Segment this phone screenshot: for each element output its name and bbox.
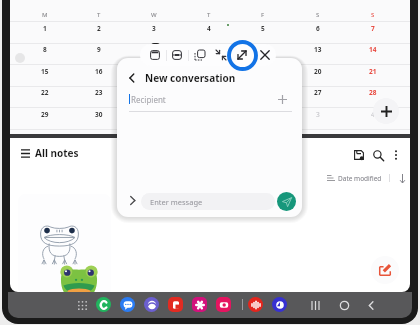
button[interactable]: 7	[345, 24, 400, 35]
button[interactable]: App	[120, 297, 135, 312]
button[interactable]: 6	[290, 24, 345, 35]
button[interactable]: 11	[181, 45, 236, 56]
staticText: W	[151, 11, 157, 19]
button[interactable]: Back	[363, 297, 379, 313]
staticText: Enter message	[150, 197, 203, 207]
button[interactable]: Close	[258, 48, 272, 62]
button[interactable]: 1	[181, 110, 236, 121]
button[interactable]: All apps	[74, 297, 90, 313]
button[interactable]: 17	[126, 67, 181, 78]
button[interactable]: Minimize	[214, 48, 228, 62]
button[interactable]: Navigation menu	[17, 145, 79, 161]
staticText: Recipient	[131, 94, 166, 105]
staticText: 12	[259, 45, 267, 54]
staticText: 1	[207, 110, 211, 119]
staticText: 1	[43, 24, 47, 33]
button[interactable]: 3	[126, 24, 181, 35]
staticText: 14	[369, 45, 377, 54]
button[interactable]: 2	[71, 24, 126, 35]
button[interactable]: Pop-up view	[193, 48, 207, 62]
button[interactable]: 19	[235, 67, 290, 78]
staticText: T	[207, 11, 211, 19]
button[interactable]: 12	[235, 45, 290, 56]
button[interactable]: 26	[235, 88, 290, 99]
button[interactable]: Enter message	[141, 193, 275, 210]
button[interactable]: 5	[235, 24, 290, 35]
button[interactable]: 23	[71, 88, 126, 99]
button[interactable]: Expand to full screen	[227, 40, 258, 71]
staticText: 9	[97, 45, 101, 54]
staticText: 8	[43, 45, 47, 54]
button[interactable]: 18	[181, 67, 236, 78]
button[interactable]: App	[272, 297, 287, 312]
staticText: 27	[314, 88, 322, 97]
staticText: 20	[314, 67, 322, 76]
staticText: 28	[369, 88, 377, 97]
button[interactable]: Add note	[350, 146, 368, 164]
button[interactable]: Date modified	[327, 172, 407, 184]
button[interactable]: 3	[290, 110, 345, 121]
button[interactable]: 24	[126, 88, 181, 99]
button[interactable]: 10	[126, 45, 181, 56]
staticText: S	[371, 11, 375, 19]
button[interactable]: App	[216, 297, 231, 312]
button[interactable]: 20	[290, 67, 345, 78]
staticText: 23	[95, 88, 103, 97]
staticText: 7	[371, 24, 375, 33]
button[interactable]: 8	[17, 45, 72, 56]
button[interactable]: 16	[71, 67, 126, 78]
button[interactable]: Send	[277, 192, 296, 211]
button[interactable]: 14	[345, 45, 400, 56]
button[interactable]: App	[168, 297, 183, 312]
other: Navigation menu	[17, 145, 33, 161]
button[interactable]: App	[144, 297, 159, 312]
button[interactable]: 27	[290, 88, 345, 99]
button[interactable]: 4	[181, 24, 236, 35]
button[interactable]: 22	[17, 88, 72, 99]
button[interactable]: 15	[17, 67, 72, 78]
button[interactable]: 4	[345, 110, 400, 121]
button[interactable]: Search	[369, 146, 387, 164]
button[interactable]: App	[96, 297, 111, 312]
staticText: 3	[316, 110, 320, 119]
button[interactable]: 28	[345, 88, 400, 99]
button[interactable]: 1	[17, 24, 72, 35]
button[interactable]: 2	[235, 110, 290, 121]
staticText: 5	[261, 24, 265, 33]
staticText: 17	[150, 67, 158, 76]
button[interactable]: Show more options	[124, 192, 140, 208]
staticText: T	[97, 11, 101, 19]
button[interactable]: Recent apps	[307, 297, 323, 313]
button[interactable]: 13	[290, 45, 345, 56]
button[interactable]: Split screen view	[170, 48, 184, 62]
button[interactable]: New conversation	[125, 70, 236, 86]
staticText: 2	[97, 24, 101, 33]
button[interactable]: App	[248, 297, 263, 312]
staticText: 10	[150, 45, 158, 54]
button[interactable]: Expand to full screen	[235, 48, 249, 62]
button[interactable]: 9	[71, 45, 126, 56]
button[interactable]	[18, 194, 111, 292]
button[interactable]: Create note	[371, 256, 399, 284]
button[interactable]: Home	[336, 297, 352, 313]
staticText: 4	[207, 24, 211, 33]
button[interactable]: 30	[71, 110, 126, 121]
button[interactable]: 29	[17, 110, 72, 121]
staticText: 22	[41, 88, 49, 97]
button[interactable]: Add recipient	[275, 92, 289, 106]
button[interactable]: Add event	[373, 98, 399, 124]
button[interactable]: More options	[388, 147, 404, 163]
staticText: 24	[150, 88, 158, 97]
staticText: 3	[152, 24, 156, 33]
staticText: New conversation	[145, 71, 236, 85]
staticText: 29	[41, 110, 49, 119]
button[interactable]: Freeform window	[148, 48, 162, 62]
button[interactable]: App	[192, 297, 207, 312]
button[interactable]: 21	[345, 67, 400, 78]
staticText: 16	[95, 67, 103, 76]
staticText: 6	[316, 24, 320, 33]
button[interactable]: 31	[126, 110, 181, 121]
staticText: 13	[314, 45, 322, 54]
